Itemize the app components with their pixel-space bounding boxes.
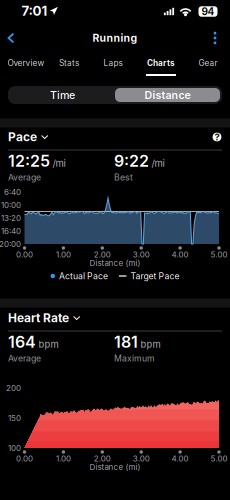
staticText: Stats <box>59 58 79 68</box>
button[interactable]: Heart Rate <box>0 307 88 329</box>
staticText: Maximum <box>114 353 155 364</box>
button[interactable]: Charts <box>138 52 184 78</box>
staticText: 150 <box>8 413 21 423</box>
button[interactable]: Laps <box>90 52 136 78</box>
staticText: 4.00 <box>172 250 189 259</box>
staticText: Average <box>8 353 41 364</box>
button[interactable]: Gear <box>185 52 230 78</box>
staticText: 3.00 <box>133 250 150 259</box>
button[interactable]: Distance <box>115 88 220 102</box>
staticText: 13:20 <box>1 213 21 223</box>
staticText: 6:40 <box>4 187 21 197</box>
staticText: Average <box>8 172 41 183</box>
button[interactable]: Stats <box>46 52 92 78</box>
staticText: Distance (mi) <box>89 258 140 268</box>
staticText: Distance (mi) <box>89 462 140 472</box>
button[interactable]: Time <box>10 88 115 102</box>
staticText: 2.00 <box>94 250 111 259</box>
staticText: 4.00 <box>172 454 189 463</box>
staticText: 10:00 <box>1 200 21 210</box>
staticText: 3.00 <box>133 454 150 463</box>
staticText: 16:40 <box>1 226 21 236</box>
button[interactable]: Overview <box>3 52 49 78</box>
staticText: bpm <box>38 339 58 350</box>
staticText: 2.00 <box>94 454 111 463</box>
button[interactable]: More options <box>203 26 227 49</box>
staticText: 164 <box>8 332 36 352</box>
staticText: 0.00 <box>16 454 33 463</box>
staticText: 12:25 <box>8 151 50 171</box>
button[interactable]: Back <box>0 27 22 49</box>
staticText: 100 <box>8 443 21 453</box>
staticText: Running <box>92 32 137 44</box>
staticText: /mi <box>151 158 164 169</box>
staticText: 1.00 <box>56 454 71 463</box>
staticText: Target Pace <box>130 271 179 281</box>
button[interactable]: Pace <box>0 126 56 148</box>
staticText: ? <box>214 131 219 143</box>
staticText: 181 <box>114 332 138 352</box>
staticText: 7:01 <box>21 3 47 19</box>
staticText: 1.00 <box>56 250 71 259</box>
staticText: Best <box>114 172 133 183</box>
staticText: 20:00 <box>0 239 21 249</box>
staticText: 5.00 <box>210 250 227 259</box>
staticText: 94 <box>201 5 214 18</box>
staticText: Laps <box>103 58 122 68</box>
staticText: bpm <box>140 339 160 350</box>
button[interactable]: About Pace <box>209 129 225 145</box>
staticText: Actual Pace <box>59 271 108 281</box>
staticText: Overview <box>7 58 44 68</box>
staticText: 9:22 <box>114 151 149 171</box>
staticText: Distance <box>144 88 190 101</box>
staticText: Pace <box>8 130 37 144</box>
staticText: /mi <box>52 158 65 169</box>
staticText: Gear <box>198 58 217 68</box>
staticText: Time <box>50 88 75 101</box>
staticText: 200 <box>6 383 21 393</box>
staticText: 0.00 <box>16 250 33 259</box>
staticText: Heart Rate <box>8 311 69 325</box>
staticText: 5.00 <box>210 454 227 463</box>
staticText: Charts <box>147 58 175 68</box>
